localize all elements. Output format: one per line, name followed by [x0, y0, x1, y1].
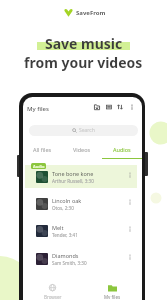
staticText: Save music	[45, 34, 123, 53]
button[interactable]: Track options	[126, 198, 134, 206]
button[interactable]: All files	[23, 146, 62, 159]
staticText: from your videos	[24, 53, 143, 72]
staticText: Audio	[33, 164, 45, 169]
staticText: Sam Smith, 3:30	[52, 260, 87, 266]
button[interactable]: Track options	[126, 171, 134, 179]
button[interactable]: Browser	[23, 283, 82, 299]
staticText: Tone bone kone	[52, 170, 94, 177]
button[interactable]: Downloads	[93, 103, 101, 111]
button[interactable]: Track options	[126, 225, 134, 233]
staticText: Diamonds	[52, 252, 79, 259]
staticText: SaveFrom	[76, 9, 106, 17]
staticText: Arthur Russell, 3:30	[52, 178, 94, 184]
button[interactable]: Lincoln oak	[23, 192, 142, 215]
other: My files	[108, 283, 117, 292]
staticText: Browser	[44, 294, 62, 299]
other: Browser	[48, 283, 57, 292]
button[interactable]: Audios	[102, 146, 142, 159]
button[interactable]: Search	[29, 125, 138, 136]
staticText: Otos, 2:30	[52, 205, 74, 211]
button[interactable]: Melt	[23, 219, 142, 242]
staticText: Videos	[73, 146, 91, 153]
button[interactable]: Videos	[62, 146, 102, 159]
staticText: Search	[79, 127, 95, 134]
button[interactable]: Tone bone kone	[23, 165, 142, 188]
staticText: Lincoln oak	[52, 197, 82, 204]
staticText: Tender, 3:41	[52, 232, 78, 238]
staticText: My files	[104, 294, 121, 299]
button[interactable]: More options	[128, 103, 136, 111]
button[interactable]: Track options	[126, 253, 134, 261]
staticText: Audios	[113, 146, 131, 153]
button[interactable]: Diamonds	[23, 247, 142, 270]
staticText: My files	[27, 105, 49, 113]
staticText: All files	[33, 146, 52, 153]
button[interactable]: My files	[82, 283, 142, 299]
button[interactable]: Sort	[116, 103, 124, 111]
button[interactable]: List view	[105, 103, 113, 111]
staticText: Melt	[52, 224, 64, 231]
